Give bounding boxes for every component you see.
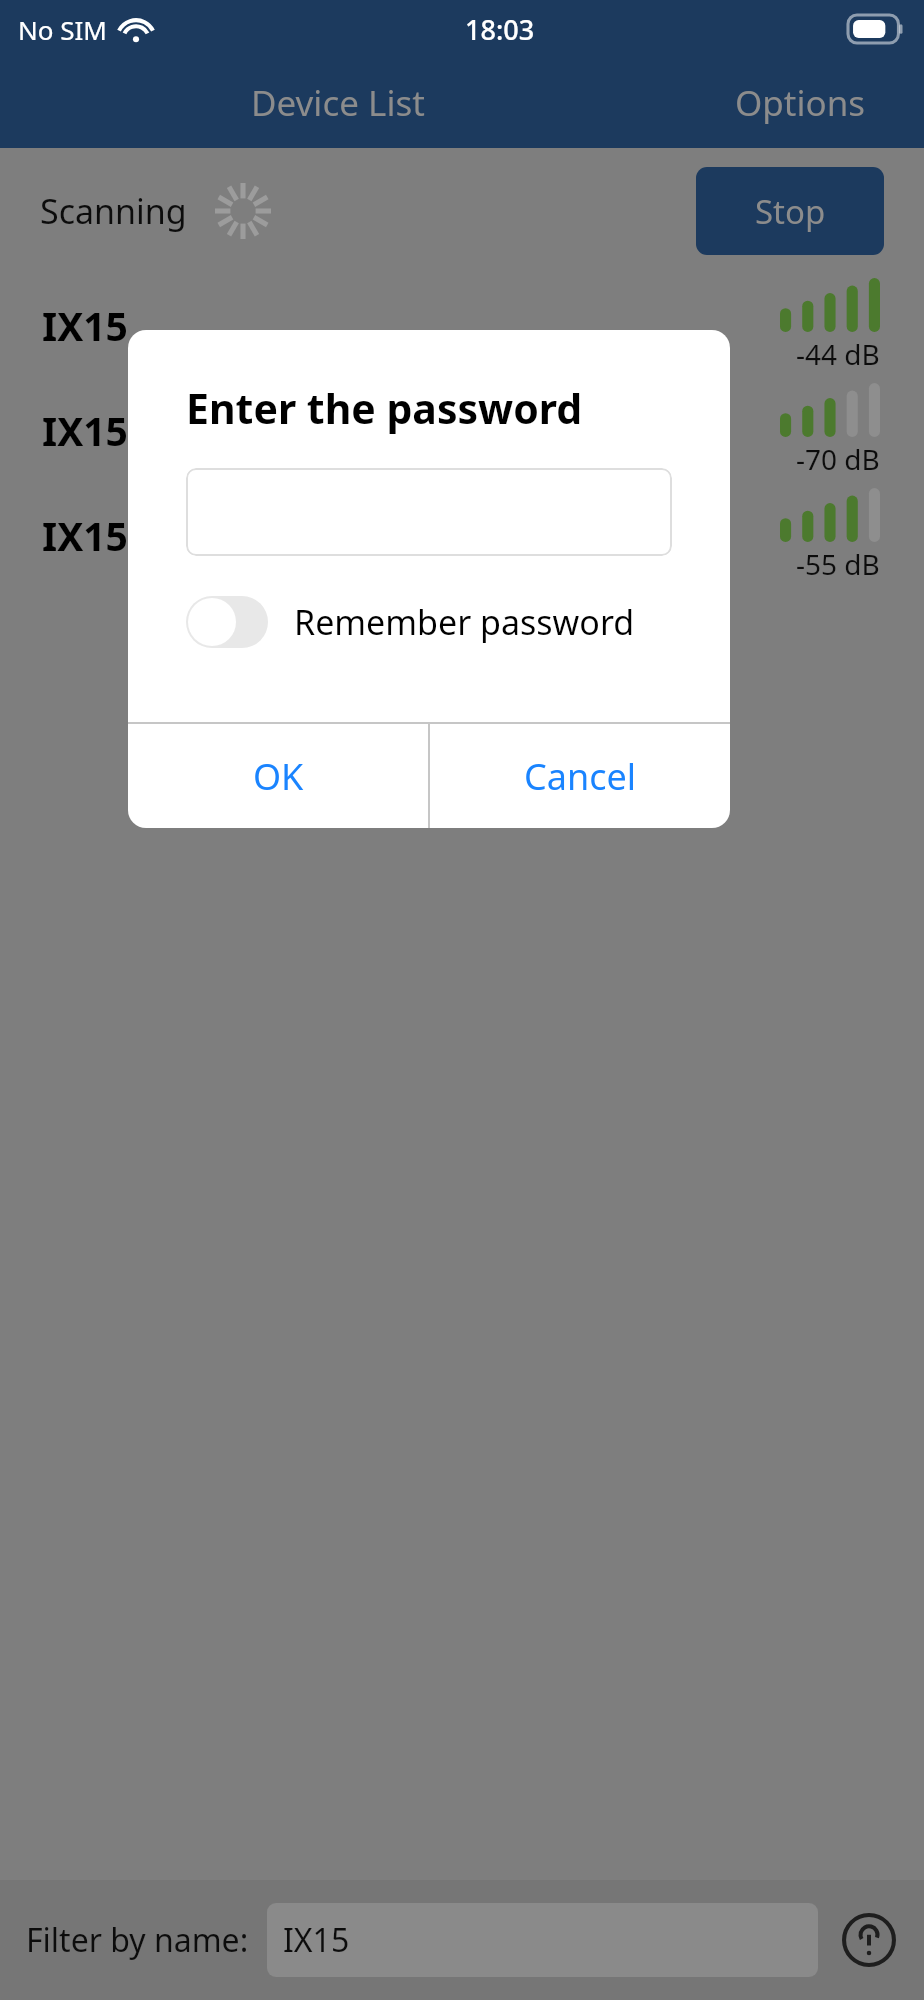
staticText: Cancel: [524, 752, 637, 801]
staticText: Enter the password: [186, 380, 583, 436]
staticText: IX15: [42, 299, 128, 352]
button[interactable]: Help: [840, 1911, 898, 1969]
button[interactable]: Stop: [696, 167, 884, 255]
staticText: IX15: [42, 509, 128, 562]
button[interactable]: Remember password: [186, 596, 635, 648]
staticText: -44 dB: [796, 335, 880, 373]
staticText: No SIM: [18, 12, 107, 47]
button[interactable]: Device List: [0, 58, 676, 148]
staticText: Stop: [755, 189, 826, 234]
staticText: IX15: [42, 404, 128, 457]
button[interactable]: OK: [128, 724, 428, 828]
button[interactable]: IX15: [0, 483, 924, 588]
staticText: Filter by name:: [26, 1918, 249, 1962]
staticText: 18:03: [465, 11, 535, 48]
button[interactable]: Options: [676, 58, 924, 148]
staticText: Scanning: [40, 188, 187, 234]
staticText: Remember password: [294, 599, 635, 645]
button[interactable]: IX15: [267, 1903, 818, 1977]
staticText: -70 dB: [796, 440, 880, 478]
staticText: OK: [253, 752, 304, 801]
button[interactable]: Cancel: [430, 724, 730, 828]
button[interactable]: IX15: [0, 273, 924, 378]
button[interactable]: IX15: [0, 378, 924, 483]
staticText: Device List: [251, 79, 425, 127]
staticText: -55 dB: [796, 545, 880, 583]
button[interactable]: [186, 468, 672, 556]
staticText: IX15: [283, 1918, 350, 1962]
staticText: Options: [735, 79, 866, 127]
